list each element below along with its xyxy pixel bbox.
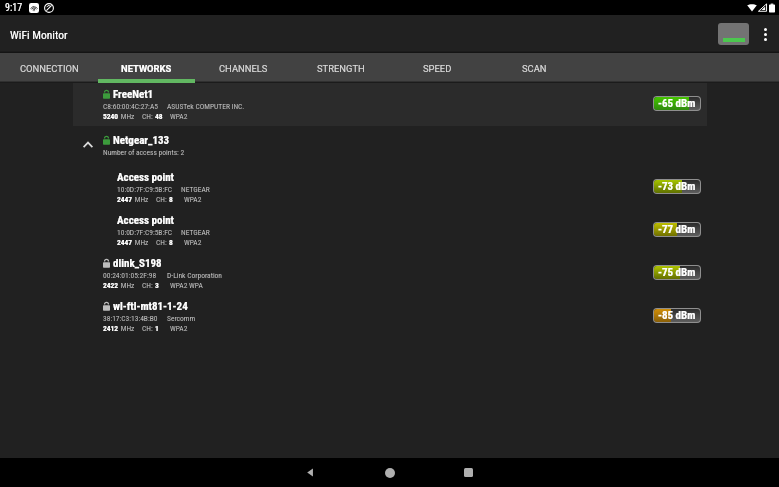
button[interactable]: Back <box>271 458 350 487</box>
button[interactable]: Access point <box>0 166 779 209</box>
staticText: FreeNet1 <box>113 88 154 101</box>
button[interactable]: CHANNELS <box>195 53 292 83</box>
staticText: CH: <box>156 238 169 247</box>
staticText: WiFi Monitor <box>10 28 68 41</box>
staticText: 8 <box>169 238 173 247</box>
staticText: NETWORKS <box>121 63 172 74</box>
staticText: SCAN <box>522 63 547 74</box>
staticText: 9:17 <box>5 2 23 14</box>
button[interactable]: NETWORKS <box>98 53 195 83</box>
staticText: 38:17:C3:13:4B:B0 <box>103 314 158 323</box>
staticText: WPA2 WPA <box>170 281 203 290</box>
staticText: 2422 <box>103 281 119 290</box>
staticText: 2412 <box>103 324 119 333</box>
staticText: 10:0D:7F:C9:5B:FC <box>117 228 173 237</box>
staticText: CH: <box>142 281 155 290</box>
staticText: WPA2 <box>184 195 202 204</box>
staticText: -85 dBm <box>658 309 696 322</box>
staticText: 10:0D:7F:C9:5B:FC <box>117 185 173 194</box>
staticText: C8:60:00:4C:27:A5 <box>103 102 158 111</box>
staticText: 48 <box>155 112 163 121</box>
button[interactable]: SCAN <box>486 53 583 83</box>
button[interactable]: Netgear_133 <box>0 126 779 166</box>
staticText: -65 dBm <box>658 97 696 110</box>
staticText: SPEED <box>423 63 452 74</box>
staticText: 3 <box>155 281 159 290</box>
staticText: -75 dBm <box>658 266 696 279</box>
staticText: dlink_S198 <box>113 257 162 270</box>
button[interactable]: FreeNet1 <box>0 83 779 126</box>
button[interactable]: Home <box>350 458 429 487</box>
staticText: CHANNELS <box>219 63 268 74</box>
staticText: WPA2 <box>170 112 188 121</box>
staticText: CH: <box>156 195 169 204</box>
staticText: MHz <box>119 281 135 290</box>
staticText: 8 <box>169 195 173 204</box>
staticText: CH: <box>142 112 155 121</box>
staticText: WPA2 <box>184 238 202 247</box>
staticText: Access point <box>117 171 174 184</box>
staticText: 2447 <box>117 195 133 204</box>
button[interactable]: CONNECTION <box>1 53 98 83</box>
staticText: NETGEAR <box>181 228 210 237</box>
staticText: 00:24:01:05:2F:98 <box>103 271 157 280</box>
button[interactable]: Access point <box>0 209 779 252</box>
staticText: Sercomm <box>167 314 196 323</box>
staticText: MHz <box>133 195 149 204</box>
button[interactable]: SPEED <box>389 53 486 83</box>
staticText: -77 dBm <box>658 223 696 236</box>
button[interactable]: STRENGTH <box>292 53 389 83</box>
staticText: Access point <box>117 214 174 227</box>
staticText: 2447 <box>117 238 133 247</box>
staticText: wl-ftl-mt81-1-24 <box>113 300 188 313</box>
staticText: -73 dBm <box>658 180 696 193</box>
staticText: MHz <box>133 238 149 247</box>
staticText: ASUSTek COMPUTER INC. <box>167 102 245 111</box>
staticText: NETGEAR <box>181 185 210 194</box>
staticText: 1 <box>155 324 159 333</box>
staticText: MHz <box>119 112 135 121</box>
staticText: Netgear_133 <box>113 134 170 147</box>
button[interactable]: More options <box>751 15 779 53</box>
staticText: WPA2 <box>170 324 188 333</box>
staticText: D-Link Corporation <box>167 271 222 280</box>
staticText: MHz <box>119 324 135 333</box>
button[interactable]: wl-ftl-mt81-1-24 <box>0 295 779 338</box>
staticText: 5240 <box>103 112 119 121</box>
button[interactable]: Recent apps <box>429 458 508 487</box>
staticText: CONNECTION <box>20 63 79 74</box>
button[interactable]: Select signal view <box>714 23 751 45</box>
button[interactable]: dlink_S198 <box>0 252 779 295</box>
staticText: STRENGTH <box>317 63 365 74</box>
staticText: Number of access points: 2 <box>103 148 185 157</box>
staticText: CH: <box>142 324 155 333</box>
